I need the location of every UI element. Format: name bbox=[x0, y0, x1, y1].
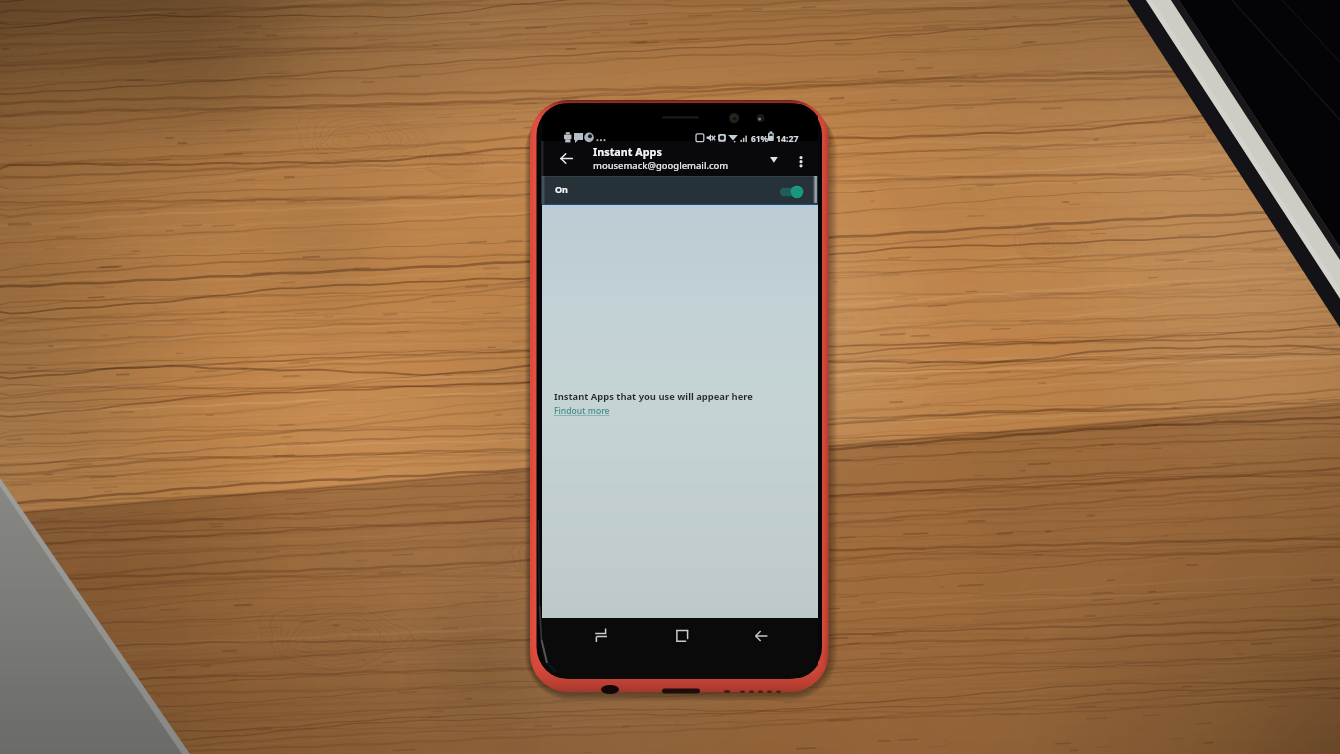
button[interactable]: Back bbox=[557, 141, 575, 176]
button[interactable]: Findout more bbox=[554, 405, 610, 417]
staticText: 61% bbox=[751, 133, 769, 144]
button[interactable]: Instant Apps on/off bbox=[779, 176, 805, 204]
staticText: Instant Apps bbox=[593, 144, 662, 159]
button[interactable]: Back bbox=[747, 618, 777, 678]
staticText: On bbox=[555, 183, 568, 195]
staticText: Instant Apps that you use will appear he… bbox=[554, 390, 753, 403]
staticText: Findout more bbox=[554, 405, 610, 417]
button[interactable]: Recent apps bbox=[586, 618, 616, 678]
button[interactable]: Switch account bbox=[763, 141, 784, 176]
staticText: mousemack@googlemail.com bbox=[593, 159, 729, 172]
staticText: 14:27 bbox=[776, 133, 799, 145]
button[interactable]: More options bbox=[793, 141, 810, 176]
button[interactable]: Home bbox=[668, 618, 696, 678]
